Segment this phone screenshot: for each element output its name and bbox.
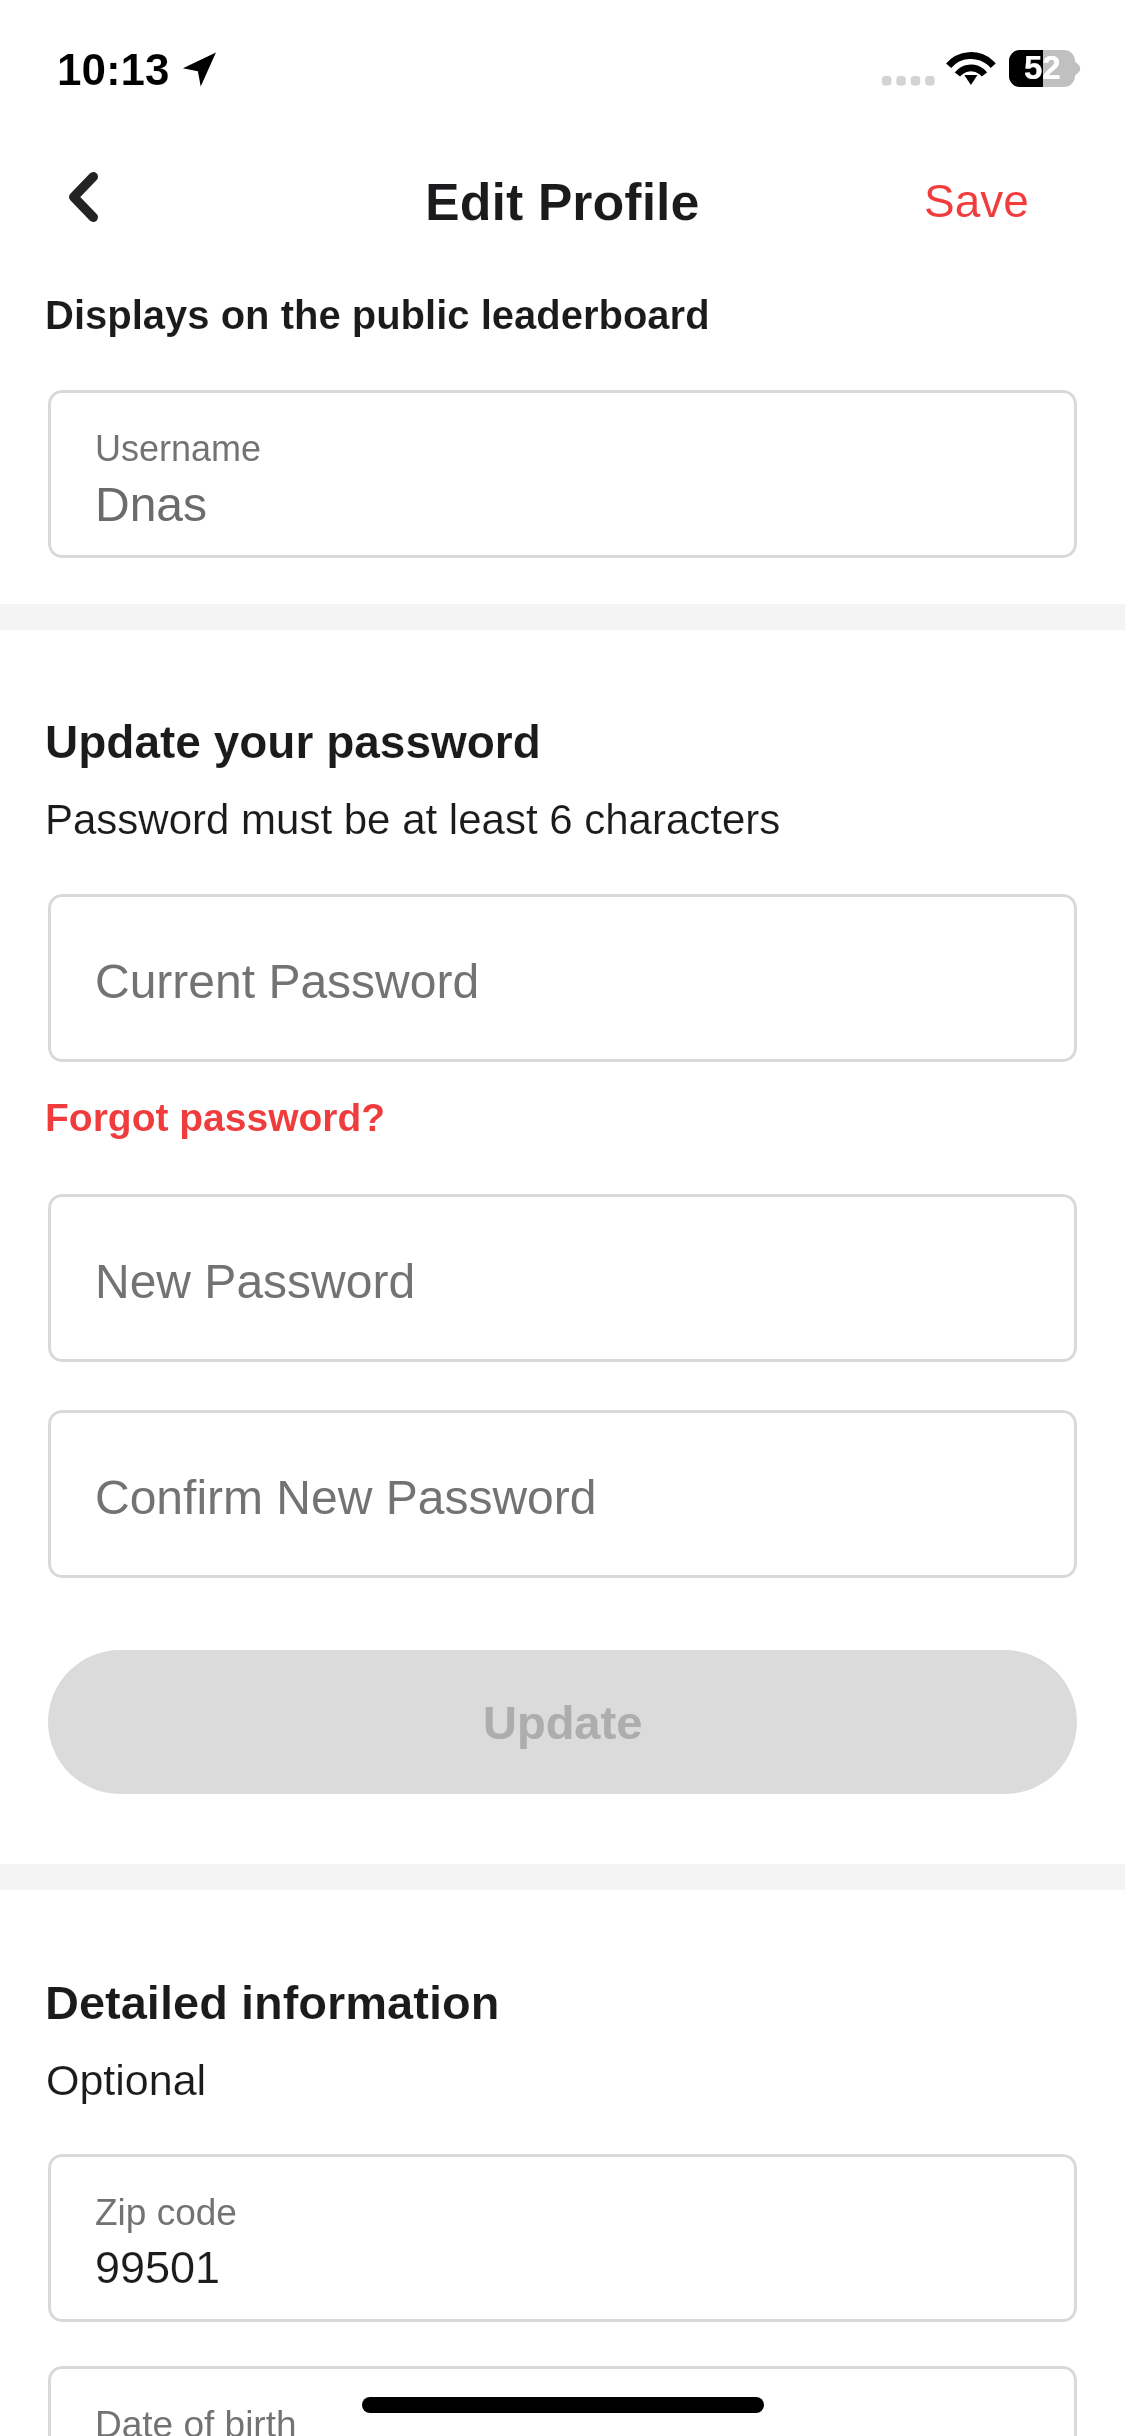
button[interactable]: Current Password — [48, 894, 1077, 1062]
staticText: Edit Profile — [425, 173, 700, 231]
staticText: 10:13 — [57, 45, 170, 94]
button[interactable]: New Password — [48, 1194, 1077, 1362]
button[interactable]: Forgot password? — [34, 1086, 400, 1148]
staticText: 99501 — [95, 2242, 221, 2292]
staticText: Displays on the public leaderboard — [45, 293, 710, 338]
staticText: Current Password — [95, 955, 480, 1009]
staticText: Save — [924, 175, 1029, 226]
button[interactable]: Date of birth — [48, 2366, 1077, 2436]
staticText: Dnas — [95, 478, 208, 532]
button[interactable]: Back — [28, 142, 138, 252]
staticText: Detailed information — [45, 1976, 500, 2029]
staticText: Update — [483, 1696, 643, 1749]
staticText: Optional — [46, 2056, 207, 2104]
staticText: Forgot password? — [45, 1096, 386, 1140]
button[interactable]: Save — [900, 142, 1077, 252]
button[interactable]: Zip code — [48, 2154, 1077, 2322]
staticText: Password must be at least 6 characters — [45, 796, 781, 843]
button[interactable]: Username — [48, 390, 1077, 558]
button[interactable]: Confirm New Password — [48, 1410, 1077, 1578]
staticText: New Password — [95, 1255, 416, 1309]
staticText: Date of birth — [95, 2404, 297, 2436]
staticText: 52 — [1024, 49, 1061, 86]
staticText: Username — [95, 428, 262, 468]
staticText: Update your password — [45, 716, 541, 767]
staticText: Confirm New Password — [95, 1471, 597, 1525]
staticText: Zip code — [95, 2192, 237, 2233]
button[interactable]: Update — [48, 1650, 1077, 1794]
